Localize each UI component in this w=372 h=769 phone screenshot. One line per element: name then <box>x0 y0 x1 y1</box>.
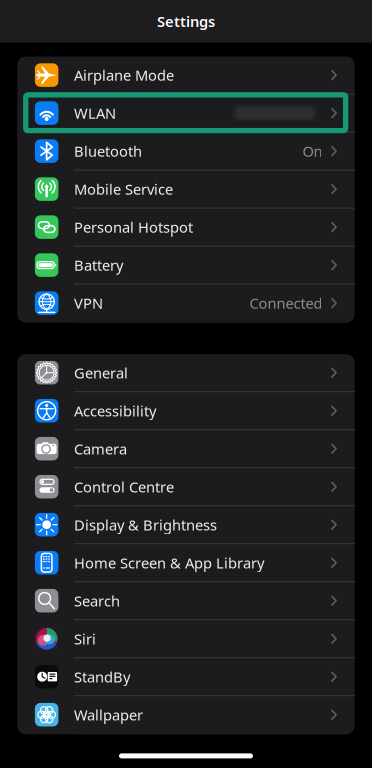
button[interactable]: Display & Brightness <box>17 506 355 544</box>
button[interactable]: WLAN <box>17 95 355 133</box>
button[interactable]: Search <box>17 582 355 620</box>
staticText: On <box>302 141 322 161</box>
button[interactable]: Personal Hotspot <box>17 209 355 247</box>
staticText: Bluetooth <box>74 141 142 161</box>
staticText: WLAN <box>74 103 116 123</box>
button[interactable]: Control Centre <box>17 468 355 506</box>
button[interactable]: VPN <box>17 285 355 323</box>
staticText: Display & Brightness <box>74 515 217 534</box>
staticText: Personal Hotspot <box>74 217 193 237</box>
staticText: Mobile Service <box>74 179 173 199</box>
button[interactable]: Siri <box>17 620 355 658</box>
button[interactable]: StandBy <box>17 658 355 696</box>
staticText: Connected <box>249 293 322 313</box>
button[interactable]: Mobile Service <box>17 171 355 209</box>
button[interactable]: General <box>17 354 355 392</box>
staticText: Search <box>74 591 120 610</box>
staticText: Accessibility <box>74 401 156 420</box>
button[interactable]: Settings <box>0 0 372 42</box>
staticText: Siri <box>74 629 96 648</box>
staticText: StandBy <box>74 667 130 686</box>
staticText: General <box>74 363 128 382</box>
staticText: VPN <box>74 293 103 313</box>
staticText: Camera <box>74 439 127 458</box>
staticText: Settings <box>157 11 215 31</box>
button[interactable]: Bluetooth <box>17 133 355 171</box>
button[interactable]: Camera <box>17 430 355 468</box>
button[interactable]: Battery <box>17 247 355 285</box>
button[interactable]: Wallpaper <box>17 696 355 734</box>
button[interactable]: Airplane Mode <box>17 57 355 95</box>
staticText: Control Centre <box>74 477 174 496</box>
staticText: Airplane Mode <box>74 65 174 85</box>
button[interactable]: Home Screen & App Library <box>17 544 355 582</box>
staticText: Battery <box>74 255 123 275</box>
staticText: Home Screen & App Library <box>74 553 264 572</box>
button[interactable]: Accessibility <box>17 392 355 430</box>
staticText: Wallpaper <box>74 705 143 724</box>
